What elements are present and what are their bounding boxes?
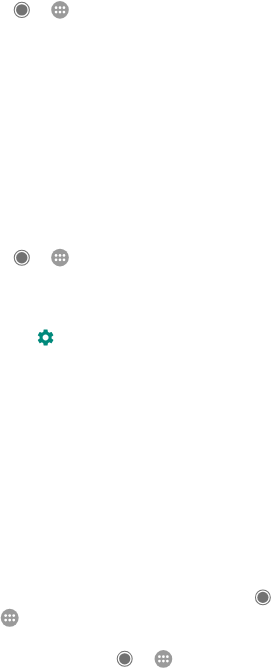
button[interactable]: More options <box>48 246 72 270</box>
button[interactable]: Selected <box>10 0 34 22</box>
button[interactable]: More options <box>0 606 22 630</box>
button[interactable]: Selected <box>113 647 137 668</box>
button[interactable]: Selected <box>251 585 273 609</box>
button[interactable]: Settings <box>34 326 58 350</box>
button[interactable]: More options <box>48 0 72 22</box>
button[interactable]: More options <box>151 647 175 668</box>
button[interactable]: Selected <box>10 246 34 270</box>
